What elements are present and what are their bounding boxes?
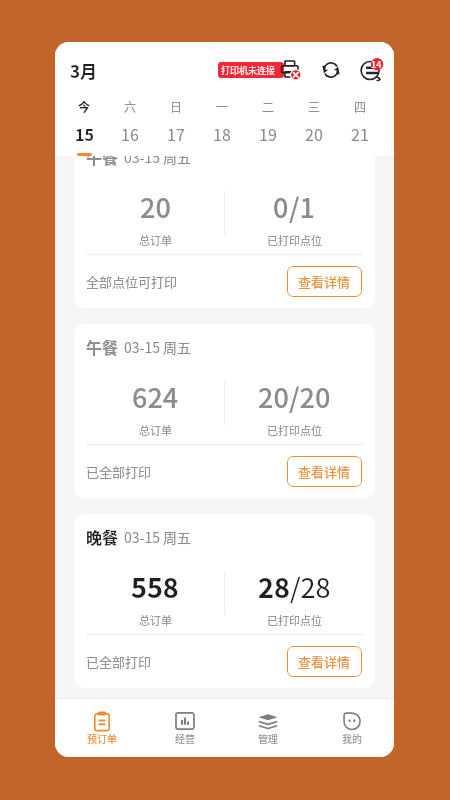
staticText: 打印机未连接 [221,64,276,77]
staticText: 20 [258,377,289,416]
staticText: 全部点位可打印 [86,272,178,291]
button[interactable]: 管理 [226,698,310,757]
button[interactable]: 一 [199,97,245,156]
button[interactable]: 查看详情 [287,646,362,677]
staticText: 0 [273,187,289,226]
staticText: 03-15 周五 [124,337,192,357]
staticText: 午餐 [86,335,119,358]
button[interactable]: 查看详情 [287,266,362,297]
staticText: 03-15 周五 [124,147,192,167]
button[interactable]: 晚餐 [74,514,375,688]
staticText: 17 [167,122,185,145]
staticText: 19 [259,122,277,145]
staticText: 14 [371,58,382,71]
staticText: 总订单 [139,422,172,438]
staticText: 管理 [258,731,278,745]
staticText: 15 [75,122,94,145]
staticText: 查看详情 [298,652,351,671]
staticText: 预订单 [87,731,117,745]
staticText: 20 [305,122,323,145]
staticText: 今 [78,98,91,115]
staticText: 21 [351,122,369,145]
staticText: 查看详情 [298,462,351,481]
staticText: 624 [132,377,179,416]
staticText: 一 [216,98,229,115]
staticText: 3月 [70,58,98,83]
staticText: /28 [290,567,331,606]
staticText: 已打印点位 [267,612,322,628]
staticText: 二 [262,98,275,115]
button[interactable]: 刷新 [317,56,345,84]
staticText: 已打印点位 [267,422,322,438]
staticText: 16 [121,122,139,145]
button[interactable]: 预订单 [60,698,143,757]
staticText: 三 [308,98,321,115]
staticText: 28 [258,567,290,606]
staticText: 四 [354,98,367,115]
staticText: 18 [213,122,231,145]
staticText: 20 [140,187,171,226]
staticText: 03-15 周五 [124,527,192,547]
staticText: 总订单 [139,612,172,628]
staticText: 日 [170,98,183,115]
staticText: /20 [289,377,331,416]
staticText: 已全部打印 [86,462,152,481]
staticText: /1 [289,187,315,226]
button[interactable]: 查看详情 [287,456,362,487]
button[interactable]: 六 [107,97,153,156]
staticText: 已打印点位 [267,232,322,248]
button[interactable]: 午餐 [74,324,375,498]
staticText: 午餐 [86,145,119,168]
staticText: 我的 [342,731,362,745]
button[interactable]: 经营 [143,698,226,757]
button[interactable]: 打印机未连接 [212,56,302,84]
staticText: 晚餐 [86,525,119,548]
staticText: 经营 [175,731,195,745]
staticText: 558 [131,567,179,606]
button[interactable]: 二 [245,97,291,156]
button[interactable]: 午餐 [74,134,375,308]
button[interactable]: 我的 [310,698,394,757]
button[interactable]: 消息 [355,54,387,86]
staticText: 查看详情 [298,272,351,291]
button[interactable]: 日 [153,97,199,156]
button[interactable]: 四 [337,97,383,156]
staticText: 六 [124,98,137,115]
button[interactable]: 今 [62,97,107,156]
staticText: 已全部打印 [86,652,152,671]
button[interactable]: 三 [291,97,337,156]
staticText: 总订单 [139,232,172,248]
